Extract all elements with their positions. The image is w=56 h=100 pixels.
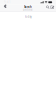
staticText: online [23, 8, 33, 11]
button[interactable]: New message [50, 5, 54, 9]
staticText: Sarah [24, 5, 32, 9]
staticText: Today [24, 15, 31, 18]
button[interactable]: Search [46, 5, 50, 9]
button[interactable]: Back [1, 3, 8, 11]
